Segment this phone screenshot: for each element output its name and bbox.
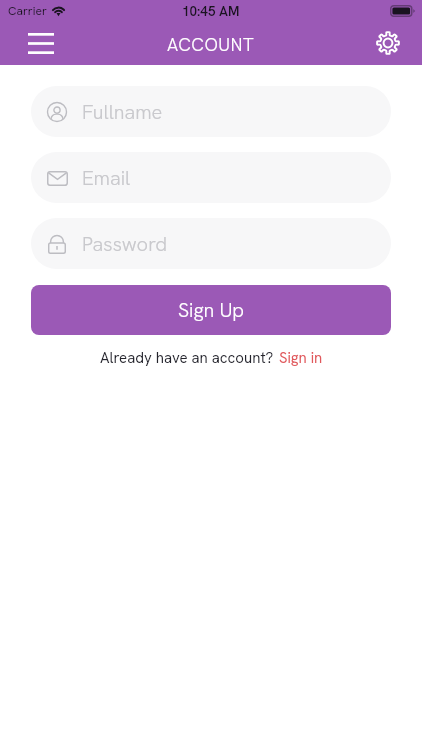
staticText: Fullname — [82, 99, 163, 125]
button[interactable]: Sign in — [279, 348, 323, 368]
staticText: Password — [82, 231, 168, 257]
staticText: Sign in — [279, 348, 323, 368]
staticText: 10:45 AM — [182, 2, 240, 20]
button[interactable]: Menu — [19, 21, 63, 65]
button[interactable]: Sign Up — [31, 285, 391, 335]
staticText: Sign Up — [178, 297, 245, 323]
staticText: Email — [82, 165, 131, 191]
staticText: Already have an account? — [100, 348, 274, 368]
button[interactable]: Password — [31, 218, 391, 269]
button[interactable]: Fullname — [31, 86, 391, 137]
staticText: ACCOUNT — [167, 33, 255, 56]
staticText: Carrier — [8, 3, 47, 19]
button[interactable]: Email — [31, 152, 391, 203]
button[interactable]: Settings — [368, 23, 408, 63]
